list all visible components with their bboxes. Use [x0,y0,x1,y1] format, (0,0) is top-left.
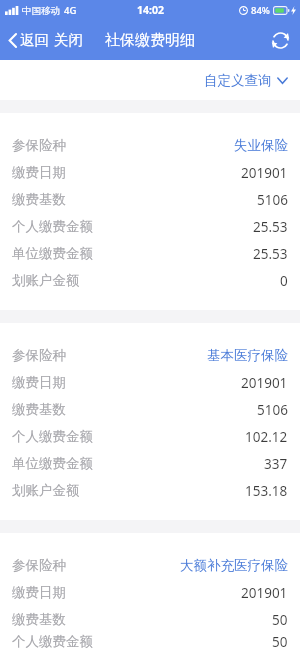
staticText: 参保险种 [12,557,66,574]
staticText: 缴费基数 [12,401,66,418]
staticText: 14:02 [137,3,164,17]
staticText: 中国移动 [22,5,60,17]
staticText: 50 [272,633,288,649]
button[interactable]: 自定义查询 [190,64,300,97]
staticText: 缴费日期 [12,374,66,391]
staticText: 5106 [257,401,288,419]
staticText: 4G [64,4,77,17]
staticText: 0 [280,272,288,290]
staticText: 25.53 [253,245,288,263]
staticText: 个人缴费金额 [12,633,93,649]
staticText: 153.18 [245,482,288,500]
staticText: 参保险种 [12,137,66,154]
staticText: 失业保险 [234,137,288,154]
staticText: 个人缴费金额 [12,218,93,235]
staticText: 缴费基数 [12,191,66,208]
staticText: 参保险种 [12,347,66,364]
staticText: 自定义查询 [204,72,272,89]
staticText: 201901 [241,584,288,602]
staticText: 337 [264,455,288,473]
button[interactable]: 参保险种 [0,113,300,310]
staticText: 单位缴费金额 [12,245,93,262]
staticText: 25.53 [253,218,288,236]
staticText: 201901 [241,164,288,182]
staticText: 返回 [20,31,49,49]
button[interactable]: Refresh [262,23,300,58]
staticText: 基本医疗保险 [207,347,288,364]
staticText: 84% [251,4,270,17]
staticText: 单位缴费金额 [12,455,93,472]
button[interactable]: 返回 [0,24,91,56]
staticText: 大额补充医疗保险 [180,557,288,574]
staticText: 个人缴费金额 [12,428,93,445]
staticText: 5106 [257,191,288,209]
staticText: 缴费日期 [12,164,66,181]
button[interactable]: 参保险种 [0,533,300,649]
staticText: 50 [272,611,288,629]
button[interactable]: 参保险种 [0,323,300,520]
staticText: 社保缴费明细 [105,31,195,50]
staticText: 缴费基数 [12,611,66,628]
staticText: 划账户金额 [12,482,80,499]
staticText: 缴费日期 [12,584,66,601]
staticText: 划账户金额 [12,272,80,289]
staticText: 102.12 [245,428,288,446]
staticText: 关闭 [54,31,83,49]
staticText: 201901 [241,374,288,392]
